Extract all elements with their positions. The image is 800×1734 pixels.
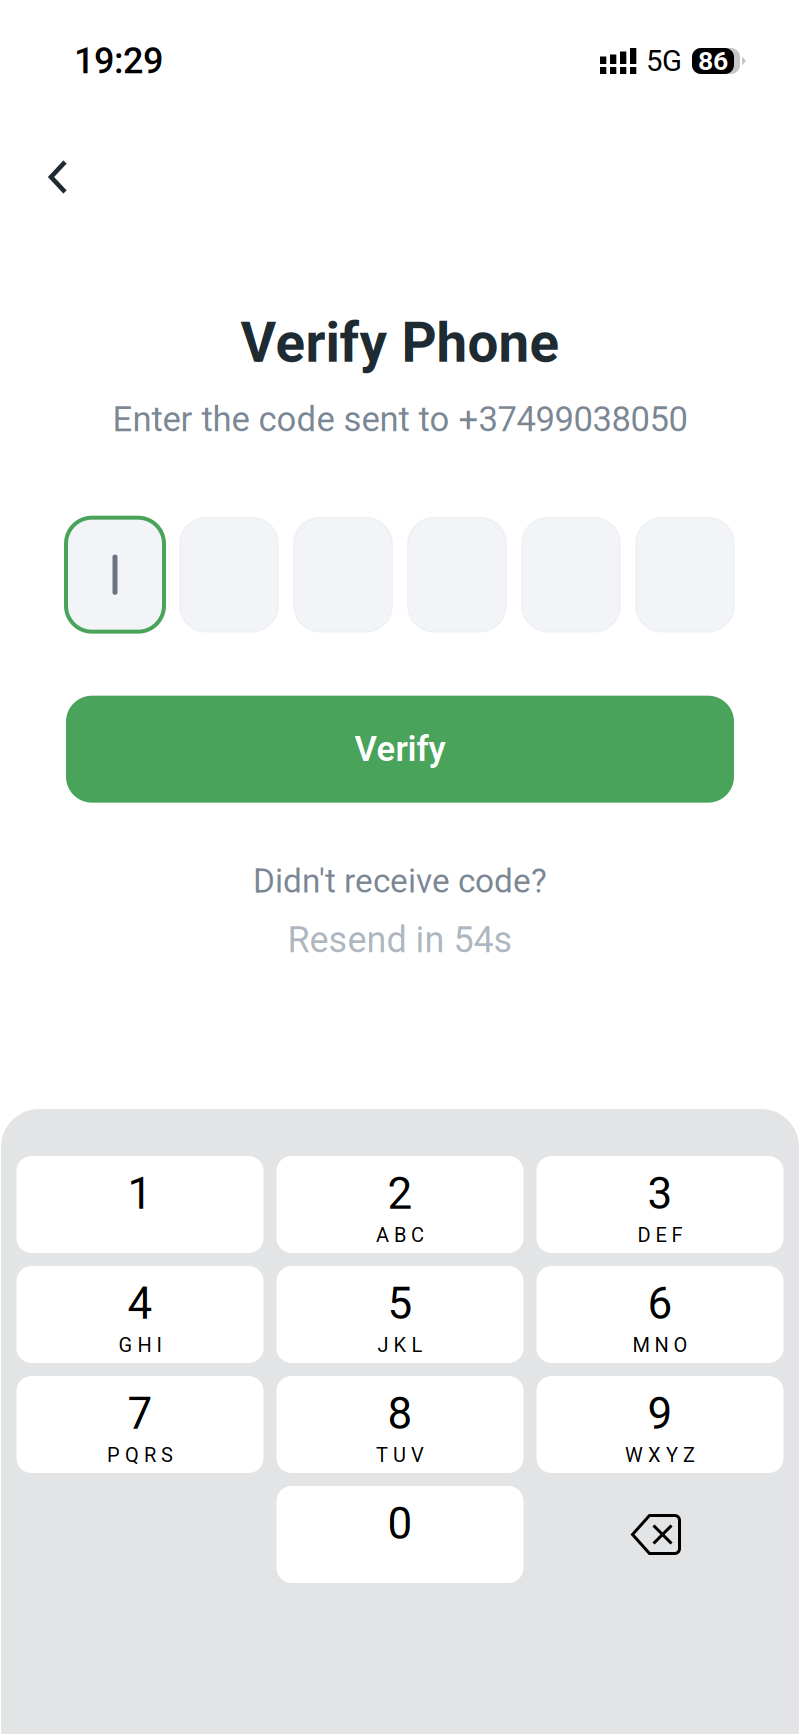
staticText: Enter the code sent to +37499038050 — [112, 399, 687, 440]
staticText: A B C — [376, 1224, 424, 1247]
staticText: 5G — [646, 44, 682, 78]
staticText: 4 — [127, 1278, 152, 1330]
button[interactable]: 9 — [536, 1376, 783, 1473]
staticText: P Q R S — [107, 1444, 173, 1467]
staticText: T U V — [376, 1444, 424, 1467]
staticText: Resend in 54s — [287, 919, 512, 961]
button[interactable]: 1 — [16, 1156, 263, 1253]
staticText: 3 — [647, 1168, 672, 1220]
button[interactable]: 2 — [276, 1156, 523, 1253]
staticText: 6 — [647, 1278, 672, 1330]
button[interactable]: Delete — [536, 1486, 783, 1583]
button[interactable]: Back — [0, 146, 88, 208]
staticText: Verify Phone — [240, 311, 559, 375]
button[interactable]: 4 — [16, 1266, 263, 1363]
staticText: 19:29 — [74, 40, 163, 82]
button[interactable]: 5 — [276, 1266, 523, 1363]
staticText: 1 — [127, 1168, 152, 1220]
button[interactable]: 6 — [536, 1266, 783, 1363]
staticText: 86 — [698, 45, 728, 77]
button[interactable]: Didn't receive code? — [253, 862, 547, 901]
button[interactable]: 0 — [276, 1486, 523, 1583]
staticText: Didn't receive code? — [253, 862, 547, 901]
button[interactable]: 7 — [16, 1376, 263, 1473]
button[interactable]: Verify — [66, 696, 734, 803]
staticText: G H I — [118, 1334, 161, 1357]
staticText: 5 — [387, 1278, 412, 1330]
staticText: M N O — [632, 1334, 687, 1357]
staticText: 9 — [647, 1388, 672, 1440]
staticText: 7 — [127, 1388, 152, 1440]
staticText: D E F — [637, 1224, 682, 1247]
staticText: W X Y Z — [625, 1444, 695, 1467]
staticText: J K L — [377, 1334, 422, 1357]
staticText: 2 — [387, 1168, 412, 1220]
staticText: 0 — [387, 1498, 412, 1550]
button[interactable]: 8 — [276, 1376, 523, 1473]
staticText: Verify — [354, 729, 445, 769]
staticText: 8 — [387, 1388, 412, 1440]
button[interactable]: 3 — [536, 1156, 783, 1253]
